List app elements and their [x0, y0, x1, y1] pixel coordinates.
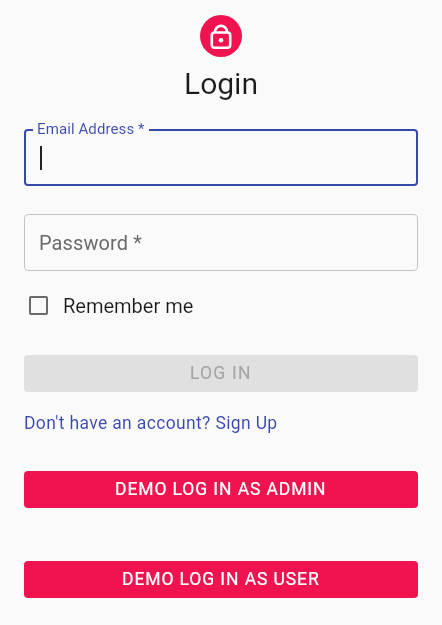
button[interactable]: DEMO LOG IN AS ADMIN [24, 471, 418, 508]
staticText: Email Address * [37, 120, 145, 138]
staticText: DEMO LOG IN AS ADMIN [115, 479, 327, 500]
staticText: LOG IN [190, 363, 252, 384]
button[interactable] [24, 129, 418, 186]
staticText: Login [184, 66, 258, 101]
button[interactable]: Don't have an account? Sign Up [24, 413, 278, 434]
staticText: Remember me [63, 294, 194, 317]
staticText: Password * [39, 231, 142, 254]
button[interactable]: DEMO LOG IN AS USER [24, 561, 418, 598]
button[interactable]: Remember me [24, 294, 194, 317]
staticText: DEMO LOG IN AS USER [122, 569, 320, 590]
button[interactable]: Password * [24, 214, 418, 271]
button[interactable]: LOG IN [24, 355, 418, 392]
